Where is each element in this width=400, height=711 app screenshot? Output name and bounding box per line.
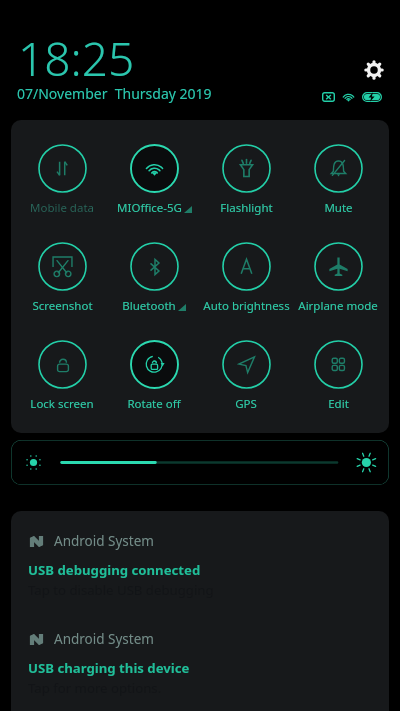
button[interactable]: Android System	[11, 511, 389, 609]
staticText: Rotate off	[127, 396, 181, 412]
staticText: 07/November Thursday 2019	[17, 84, 212, 103]
button[interactable]: Mobile data	[16, 141, 108, 239]
staticText: Flashlight	[220, 200, 273, 216]
button[interactable]: MIOffice-5G	[108, 141, 200, 239]
button[interactable]: Brightness	[11, 440, 389, 485]
staticText: Screenshot	[32, 298, 93, 314]
button[interactable]: Mute	[292, 141, 384, 239]
button[interactable]: GPS	[200, 337, 292, 433]
staticText: Airplane mode	[298, 298, 378, 314]
staticText: USB charging this device	[28, 659, 190, 677]
staticText: Lock screen	[30, 396, 94, 412]
button[interactable]: Lock screen	[16, 337, 108, 433]
staticText: GPS	[235, 396, 257, 412]
staticText: Mobile data	[30, 200, 94, 216]
staticText: Auto brightness	[203, 298, 290, 314]
button[interactable]: Android System	[11, 609, 389, 707]
button[interactable]: Auto brightness	[200, 239, 292, 337]
staticText: Mute	[324, 200, 353, 216]
staticText: MIOffice-5G	[117, 200, 182, 216]
button[interactable]: Screenshot	[16, 239, 108, 337]
staticText: Android System	[54, 532, 154, 550]
button[interactable]: Edit	[292, 337, 384, 433]
button[interactable]: Flashlight	[200, 141, 292, 239]
staticText: Bluetooth	[122, 298, 176, 314]
button[interactable]: Rotate off	[108, 337, 200, 433]
button[interactable]: Settings	[359, 55, 389, 85]
staticText: Android System	[54, 630, 154, 648]
staticText: 18:25	[18, 27, 135, 90]
staticText: USB debugging connected	[28, 561, 201, 579]
button[interactable]: Airplane mode	[292, 239, 384, 337]
staticText: Edit	[328, 396, 349, 412]
button[interactable]: Bluetooth	[108, 239, 200, 337]
